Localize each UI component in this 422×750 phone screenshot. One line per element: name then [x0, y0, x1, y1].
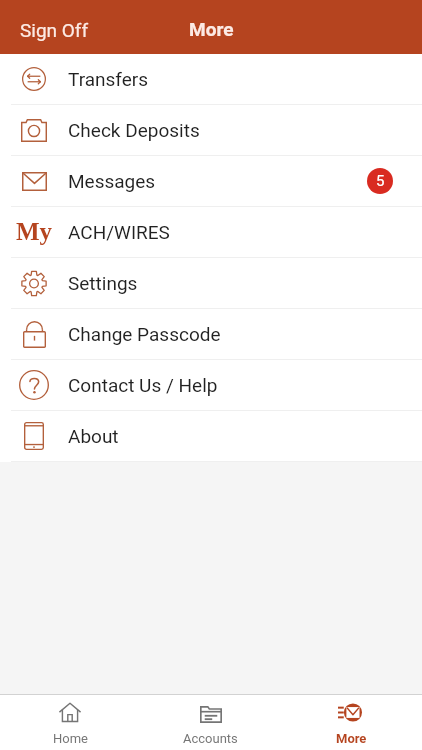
- button[interactable]: Sign Off: [0, 4, 103, 50]
- staticText: Settings: [68, 272, 138, 294]
- button[interactable]: Accounts: [140, 694, 281, 750]
- button[interactable]: Messages: [0, 156, 422, 207]
- button[interactable]: Change Passcode: [0, 309, 422, 360]
- staticText: Change Passcode: [68, 323, 221, 345]
- button[interactable]: More: [281, 694, 422, 750]
- staticText: Sign Off: [20, 19, 89, 41]
- staticText: My: [16, 218, 53, 246]
- button[interactable]: Transfers: [0, 54, 422, 105]
- button[interactable]: Home: [0, 694, 140, 750]
- staticText: Accounts: [183, 731, 238, 746]
- button[interactable]: My: [0, 207, 422, 258]
- staticText: Transfers: [68, 68, 149, 90]
- button[interactable]: Settings: [0, 258, 422, 309]
- staticText: Home: [53, 731, 88, 746]
- staticText: 5: [376, 172, 385, 190]
- button[interactable]: About: [0, 411, 422, 462]
- button[interactable]: Contact Us / Help: [0, 360, 422, 411]
- staticText: Contact Us / Help: [68, 374, 218, 396]
- staticText: Check Deposits: [68, 119, 200, 141]
- staticText: ACH/WIRES: [68, 221, 170, 243]
- staticText: More: [336, 731, 367, 746]
- staticText: About: [68, 425, 119, 447]
- staticText: Messages: [68, 170, 156, 192]
- staticText: More: [189, 18, 234, 40]
- button[interactable]: Check Deposits: [0, 105, 422, 156]
